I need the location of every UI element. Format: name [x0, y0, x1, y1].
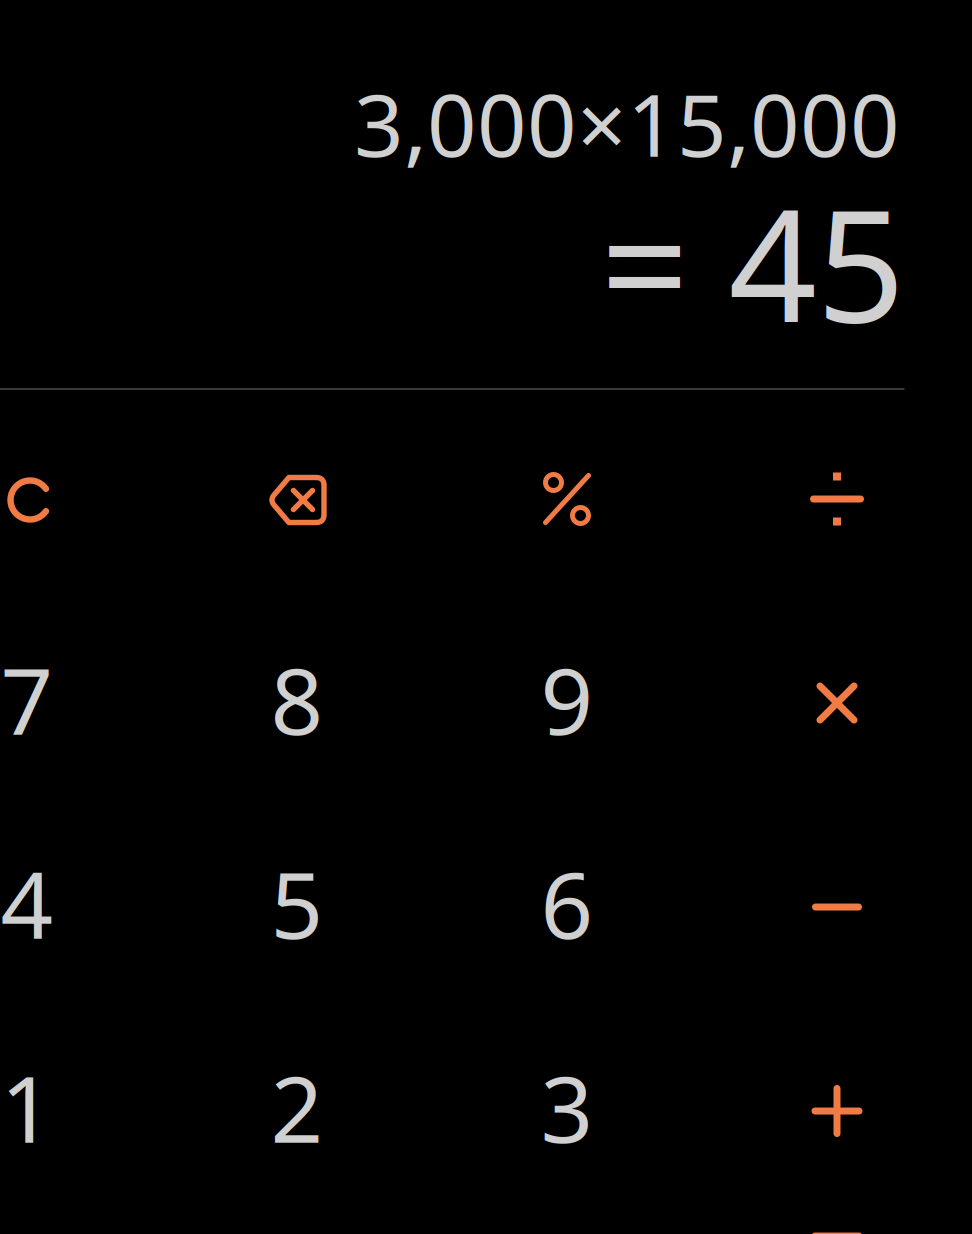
- staticText: 7: [0, 638, 53, 760]
- button[interactable]: Three: [432, 1009, 702, 1213]
- staticText: 3,000×15,000: [354, 65, 900, 181]
- button[interactable]: Clear: [0, 397, 162, 601]
- button[interactable]: Equals: [702, 1145, 972, 1234]
- button[interactable]: Five: [162, 805, 432, 1009]
- staticText: 3: [540, 1046, 593, 1168]
- button[interactable]: Four: [0, 805, 162, 1009]
- button[interactable]: Two: [162, 1009, 432, 1213]
- button[interactable]: Seven: [0, 601, 162, 805]
- button[interactable]: Subtract: [702, 805, 972, 1009]
- button[interactable]: Divide: [702, 397, 972, 601]
- staticText: 1: [0, 1046, 53, 1168]
- button[interactable]: Six: [432, 805, 702, 1009]
- button[interactable]: Delete: [162, 397, 432, 601]
- staticText: 9: [540, 638, 593, 760]
- button[interactable]: Percent: [432, 397, 702, 601]
- staticText: 8: [270, 638, 323, 760]
- button[interactable]: Add: [702, 1009, 972, 1213]
- staticText: 6: [540, 842, 593, 964]
- button[interactable]: Eight: [162, 601, 432, 805]
- staticText: 5: [270, 842, 323, 964]
- button[interactable]: One: [0, 1009, 162, 1213]
- staticText: = 45: [600, 159, 904, 365]
- staticText: 4: [0, 842, 53, 964]
- button[interactable]: Multiply: [702, 601, 972, 805]
- button[interactable]: Nine: [432, 601, 702, 805]
- staticText: 2: [270, 1046, 323, 1168]
